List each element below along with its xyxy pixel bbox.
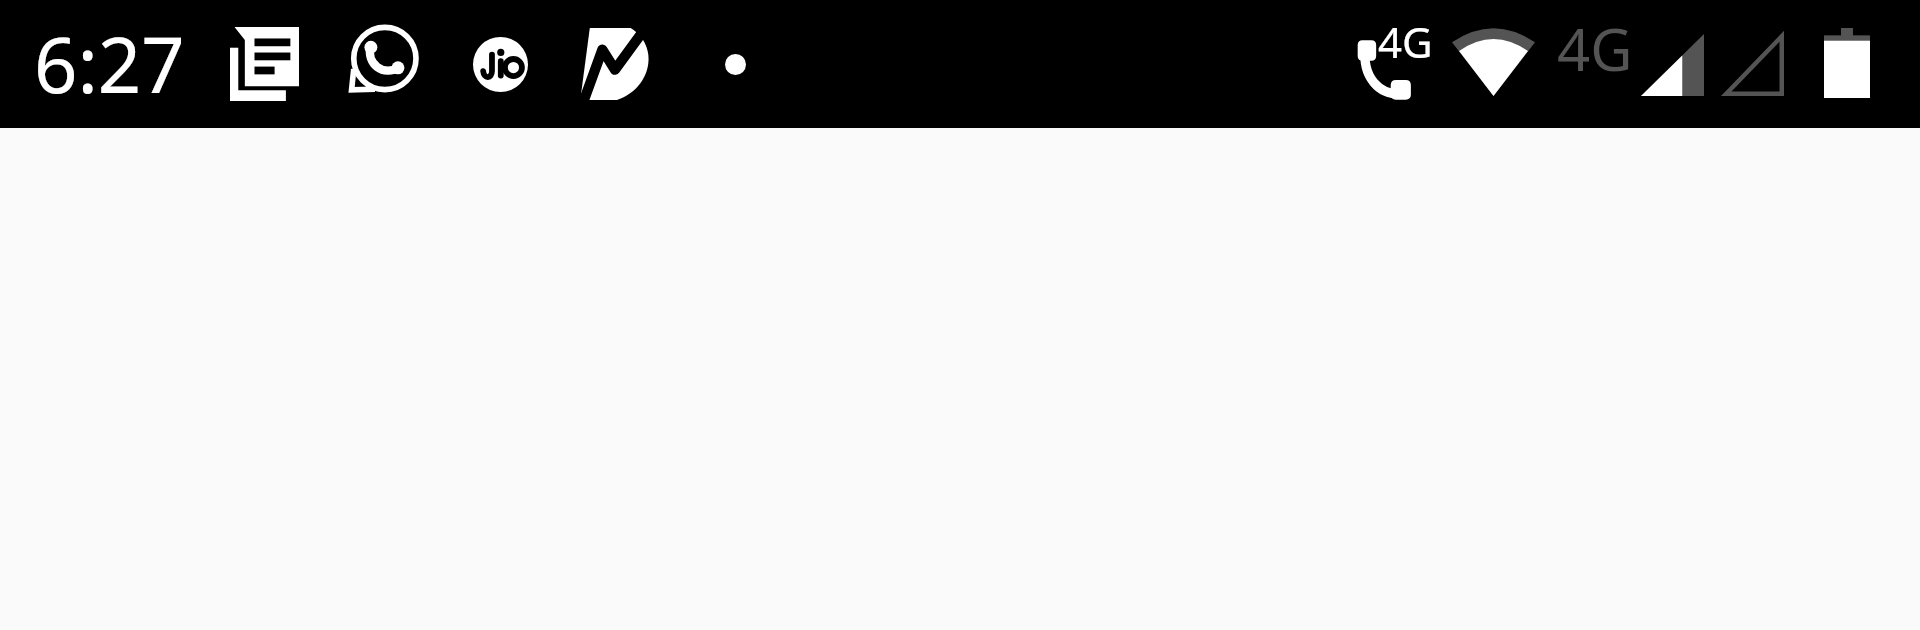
button[interactable]: Jio notification [473,37,528,92]
button[interactable]: News notification [230,27,299,101]
button[interactable]: Dailyhunt notification [583,28,651,100]
button[interactable]: Wi-Fi connected [1452,32,1535,96]
button[interactable]: Mobile signal SIM 1 [1641,34,1704,96]
button[interactable]: VoLTE 4G calling [1356,39,1412,101]
button[interactable]: 6:27 [34,12,185,116]
button[interactable]: Battery [1824,28,1870,98]
button[interactable]: 6:27 [0,0,1920,128]
staticText: 6:27 [34,12,185,116]
staticText: 4G [1378,13,1433,70]
button[interactable]: Mobile signal SIM 2 [1724,34,1784,96]
staticText: 4G [1557,9,1633,88]
button[interactable]: More notifications [725,54,746,75]
button[interactable]: WhatsApp notification [344,25,419,102]
